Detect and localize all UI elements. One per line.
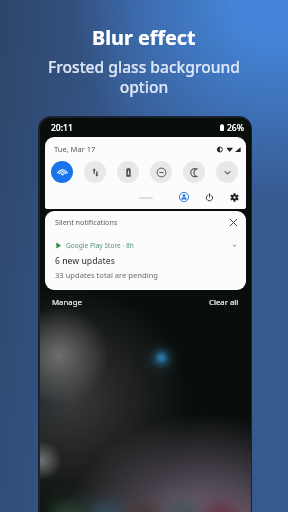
- staticText: Blur effect: [92, 24, 196, 51]
- button[interactable]: Account: [177, 190, 191, 204]
- staticText: Manage: [52, 297, 82, 308]
- button[interactable]: Clear all: [209, 295, 239, 310]
- staticText: Tue, Mar 17: [54, 144, 96, 154]
- staticText: Clear all: [209, 297, 239, 308]
- button[interactable]: Night light: [183, 161, 205, 183]
- button[interactable]: Manage: [52, 295, 82, 310]
- button[interactable]: Do not disturb: [150, 161, 172, 183]
- staticText: 20:11: [51, 122, 73, 134]
- staticText: 6 new updates: [55, 255, 115, 267]
- button[interactable]: Expand: [216, 161, 238, 183]
- button[interactable]: Wi-Fi: [51, 161, 73, 183]
- staticText: Frosted glass background option: [48, 56, 240, 97]
- button[interactable]: Battery saver: [117, 161, 139, 183]
- button[interactable]: Mobile data: [84, 161, 106, 183]
- button[interactable]: Power: [202, 190, 216, 204]
- button[interactable]: Dismiss: [228, 217, 238, 227]
- staticText: 26%: [227, 122, 244, 134]
- staticText: 33 updates total are pending: [55, 270, 158, 280]
- button[interactable]: Settings: [227, 190, 241, 204]
- staticText: Silent notifications: [55, 217, 118, 227]
- button[interactable]: Silent notifications: [45, 211, 246, 290]
- staticText: Google Play Store · 8h: [66, 241, 134, 250]
